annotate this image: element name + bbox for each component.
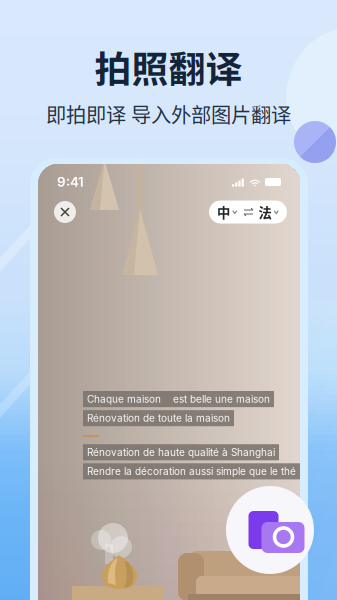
staticText: 拍照翻译 xyxy=(94,40,242,93)
staticText: 中 xyxy=(217,202,230,222)
button[interactable]: 中 xyxy=(209,200,287,223)
staticText: 即拍即译 导入外部图片翻译 xyxy=(46,99,291,129)
staticText: Rénovation de haute qualité à Shanghai xyxy=(87,446,275,458)
staticText: Chaque maison est belle une maison xyxy=(87,393,270,405)
button[interactable]: Close xyxy=(53,200,77,224)
staticText: 9:41 xyxy=(57,174,84,190)
staticText: 法 xyxy=(258,202,271,222)
staticText: Rendre la décoration aussi simple que le… xyxy=(87,465,296,477)
button[interactable]: Photo translate xyxy=(226,486,314,574)
staticText: Rénovation de toute la maison xyxy=(87,412,230,424)
